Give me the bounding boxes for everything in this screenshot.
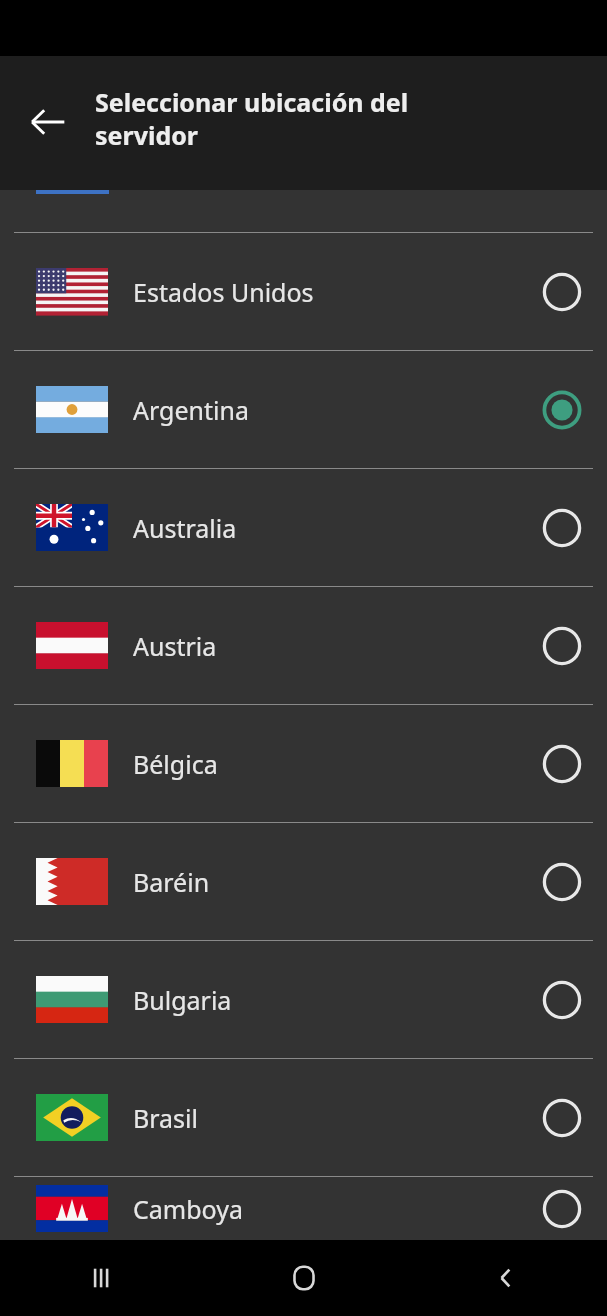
button[interactable]: Argentina [0, 351, 607, 468]
staticText: Camboya [133, 1192, 517, 1226]
button[interactable]: Back [12, 86, 84, 158]
button[interactable]: Australia [0, 469, 607, 586]
staticText: Baréin [133, 865, 517, 899]
button[interactable]: Camboya [0, 1177, 607, 1240]
staticText: Brasil [133, 1101, 517, 1135]
staticText: Bélgica [133, 747, 517, 781]
staticText: Seleccionar ubicación del servidor [95, 85, 495, 152]
button[interactable]: Baréin [0, 823, 607, 940]
button[interactable]: Back [405, 1240, 607, 1316]
staticText: Australia [133, 511, 517, 545]
button[interactable]: Home [203, 1240, 405, 1316]
button[interactable]: Recent apps [0, 1240, 203, 1316]
button[interactable]: Bulgaria [0, 941, 607, 1058]
staticText: Argentina [133, 393, 517, 427]
button[interactable]: Austria [0, 587, 607, 704]
button[interactable]: Brasil [0, 1059, 607, 1176]
staticText: Austria [133, 629, 517, 663]
staticText: Estados Unidos [133, 275, 517, 309]
button[interactable]: Estados Unidos [0, 233, 607, 350]
button[interactable]: Bélgica [0, 705, 607, 822]
staticText: Bulgaria [133, 983, 517, 1017]
